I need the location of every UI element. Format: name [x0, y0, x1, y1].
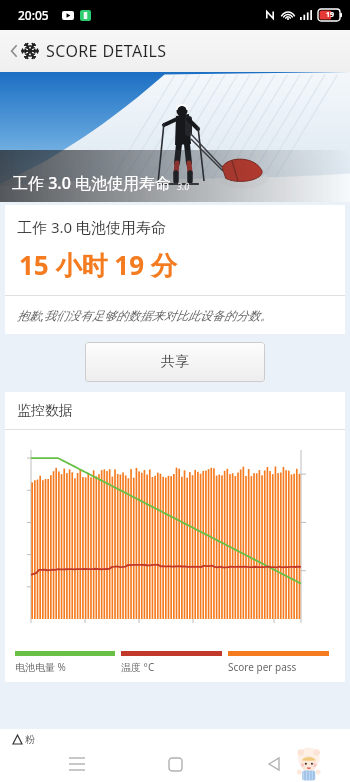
staticText: 3.0 [177, 180, 190, 192]
staticText: 工作 3.0 电池使用寿命 [17, 217, 166, 237]
staticText: Score per pass [228, 660, 297, 674]
staticText: 电池电量 % [15, 660, 66, 674]
other: Back [8, 42, 20, 60]
staticText: 监控数据 [17, 402, 73, 420]
staticText: 粉 [25, 733, 35, 746]
button[interactable]: Recents [55, 746, 99, 782]
staticText: 工作 3.0 电池使用寿命 [12, 172, 171, 194]
button[interactable]: Home [153, 746, 197, 782]
button[interactable]: Back [252, 746, 296, 782]
staticText: 15 小时 19 分 [19, 247, 177, 283]
staticText: 共享 [161, 353, 189, 371]
staticText: SCORE DETAILS [46, 40, 167, 62]
staticText: 19 [326, 10, 335, 20]
staticText: 温度 °C [121, 660, 155, 674]
button[interactable]: Back [6, 40, 169, 62]
staticText: 抱歉,我们没有足够的数据来对比此设备的分数。 [17, 307, 273, 323]
staticText: 20:05 [18, 7, 49, 23]
button[interactable]: 共享 [85, 342, 265, 382]
